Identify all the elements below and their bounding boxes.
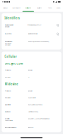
staticText: Battery — [37, 7, 42, 9]
staticText: 23.45.12 (190400-123456-000) — [28, 40, 49, 42]
staticText: Protocol — [5, 69, 11, 71]
staticText: Google — [28, 69, 33, 71]
staticText: Hardware — [12, 7, 20, 9]
staticText: SECURITY_LEVEL / PROVISIONED — [28, 118, 50, 120]
staticText: L1 (HW-backed) — [28, 111, 38, 113]
button[interactable]: Test — [45, 5, 54, 12]
staticText: 16.1 / system — [28, 97, 36, 99]
staticText: AES-128 / RSA-2048 / 1.0 — [28, 104, 43, 106]
button[interactable]: Apps — [54, 5, 63, 12]
staticText: Global — [3, 7, 7, 9]
button[interactable]: Algorithm — [2, 101, 61, 108]
button[interactable]: ID cached — [2, 30, 61, 38]
staticText: Software — [25, 7, 31, 9]
staticText: Google — [28, 90, 33, 92]
button[interactable]: Max amount HDCP — [2, 124, 61, 131]
button[interactable]: Protocol — [2, 87, 61, 94]
staticText: FROM GOOGLE PLAY — [28, 24, 42, 26]
staticText: Test — [48, 7, 51, 9]
button[interactable]: Version — [2, 94, 61, 101]
staticText: Growth subsystem — [5, 118, 13, 121]
staticText: Protocol — [5, 90, 11, 92]
staticText: HDCP 2.2 — [28, 127, 34, 128]
staticText: OneSync CDM — [5, 62, 23, 65]
button[interactable]: Global — [0, 5, 10, 12]
staticText: 1.2 — [28, 76, 30, 78]
button[interactable]: ID upload — [2, 108, 61, 115]
staticText: Algorithm — [5, 104, 11, 106]
staticText: Apps — [56, 7, 60, 9]
staticText: Stable device ID — [28, 33, 38, 35]
staticText: Widevine — [5, 82, 19, 86]
button[interactable]: Software — [22, 5, 34, 12]
staticText: Identifiers — [5, 16, 20, 20]
staticText: ID cached — [5, 33, 12, 35]
button[interactable]: Growth subsystem — [2, 115, 61, 124]
button[interactable]: ID status: stable Google — [2, 21, 61, 30]
staticText: Cellular — [5, 55, 17, 58]
button[interactable]: Hardware — [10, 5, 22, 12]
staticText: ID upload — [5, 111, 11, 113]
staticText: Google Play Services version — [5, 40, 13, 46]
button[interactable]: Battery — [34, 5, 45, 12]
staticText: Version — [5, 76, 11, 78]
button[interactable]: Google Play Services version — [2, 38, 61, 48]
button[interactable]: Protocol — [2, 67, 61, 74]
staticText: Version — [5, 97, 11, 99]
button[interactable]: Version — [2, 74, 61, 81]
staticText: Max amount HDCP — [5, 127, 17, 128]
staticText: ID status: stable Google — [5, 24, 14, 28]
